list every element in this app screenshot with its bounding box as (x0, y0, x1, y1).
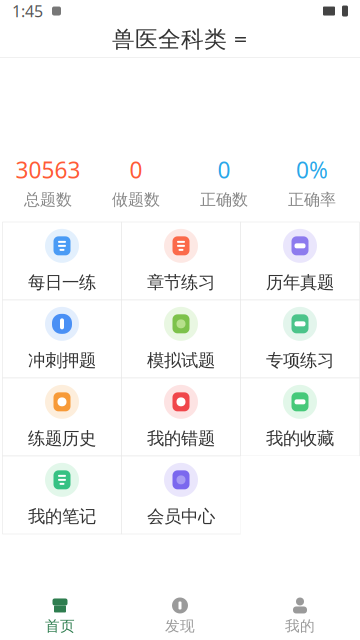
staticText: 正确率 (288, 190, 336, 209)
staticText: 首页 (45, 617, 75, 635)
button[interactable]: 模拟试题 (121, 300, 240, 378)
staticText: 历年真题 (266, 272, 334, 293)
button[interactable]: 每日一练 (2, 222, 121, 300)
staticText: 章节练习 (147, 272, 215, 293)
button[interactable]: 我的收藏 (240, 378, 359, 456)
staticText: 我的 (285, 617, 315, 635)
staticText: 会员中心 (147, 506, 215, 527)
button[interactable]: 切换科目 (233, 31, 248, 47)
staticText: 我的错题 (147, 428, 215, 449)
staticText: 发现 (165, 617, 195, 635)
button[interactable]: 会员中心 (121, 456, 240, 534)
staticText: 正确数 (200, 190, 248, 209)
staticText: 0% (296, 155, 328, 185)
staticText: 我的笔记 (28, 506, 96, 527)
button[interactable]: 发现 (120, 591, 240, 640)
button[interactable]: 练题历史 (2, 378, 121, 456)
button[interactable]: 我的笔记 (2, 456, 121, 534)
staticText: 30563 (15, 155, 80, 185)
staticText: 练题历史 (28, 428, 96, 449)
staticText: 我的收藏 (266, 428, 334, 449)
staticText: 冲刺押题 (28, 350, 96, 371)
button[interactable]: 冲刺押题 (2, 300, 121, 378)
staticText: 做题数 (112, 190, 160, 209)
staticText: 每日一练 (28, 272, 96, 293)
button[interactable]: 我的错题 (121, 378, 240, 456)
button[interactable]: 专项练习 (240, 300, 359, 378)
staticText: 0 (129, 155, 142, 185)
staticText: 总题数 (24, 190, 72, 209)
staticText: 0 (217, 155, 230, 185)
button[interactable]: 我的 (240, 591, 360, 640)
staticText: 1:45 (12, 0, 43, 22)
button[interactable]: 章节练习 (121, 222, 240, 300)
staticText: 专项练习 (266, 350, 334, 371)
button[interactable]: 历年真题 (240, 222, 359, 300)
button[interactable]: 首页 (0, 591, 120, 640)
staticText: 兽医全科类 (112, 26, 227, 53)
staticText: 模拟试题 (147, 350, 215, 371)
